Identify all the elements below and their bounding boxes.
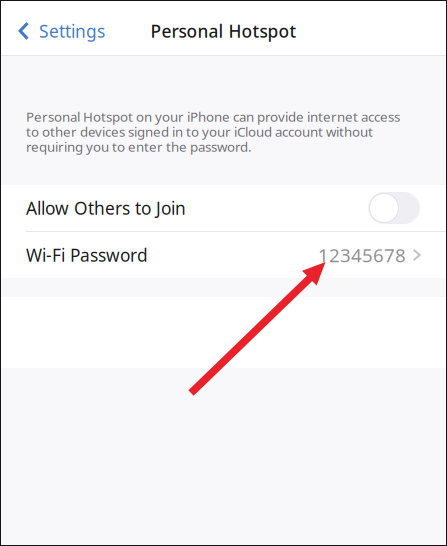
staticText: requiring you to enter the password.: [26, 138, 252, 155]
button[interactable]: Allow Others to Join: [0, 185, 447, 231]
button[interactable]: Settings: [0, 0, 117, 55]
button[interactable]: Wi-Fi Password: [0, 232, 447, 278]
staticText: Allow Others to Join: [26, 196, 186, 219]
staticText: 12345678: [318, 243, 406, 267]
staticText: to other devices signed in to your iClou…: [26, 123, 373, 140]
staticText: Personal Hotspot: [150, 19, 296, 42]
staticText: Wi-Fi Password: [26, 243, 148, 266]
staticText: Settings: [39, 19, 105, 42]
staticText: Personal Hotspot on your iPhone can prov…: [26, 108, 400, 125]
